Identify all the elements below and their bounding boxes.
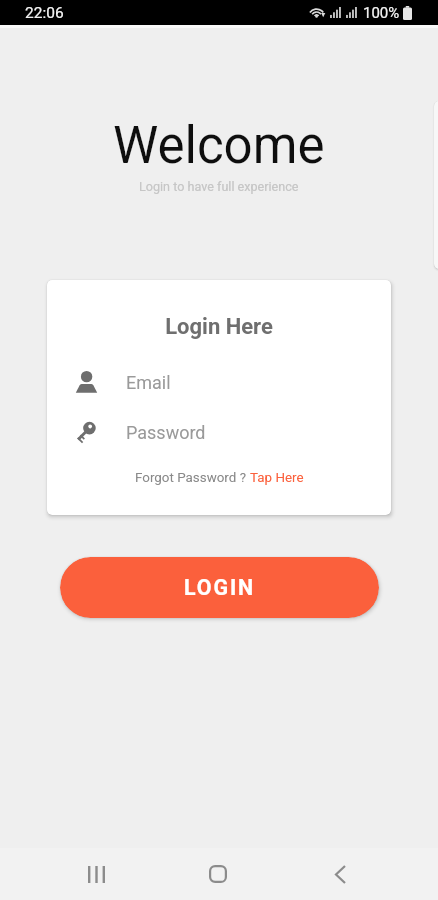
staticText: Password xyxy=(126,422,206,443)
staticText: Forgot Password ? xyxy=(135,470,250,486)
staticText: Email xyxy=(126,372,171,393)
button[interactable]: LOGIN xyxy=(60,557,379,618)
staticText: 22:06 xyxy=(25,4,64,22)
staticText: Welcome xyxy=(113,116,325,176)
button[interactable]: Back xyxy=(314,848,366,900)
staticText: Login Here xyxy=(47,314,391,340)
button[interactable]: Recent apps xyxy=(70,848,122,900)
button[interactable]: Tap Here xyxy=(250,470,304,486)
staticText: 100% xyxy=(363,4,400,22)
staticText: Login to have full experience xyxy=(139,179,299,194)
button[interactable]: Home xyxy=(192,848,244,900)
staticText: LOGIN xyxy=(184,575,256,600)
button[interactable]: Email xyxy=(47,362,391,402)
staticText: Tap Here xyxy=(250,470,304,486)
button[interactable]: Password xyxy=(47,412,391,452)
